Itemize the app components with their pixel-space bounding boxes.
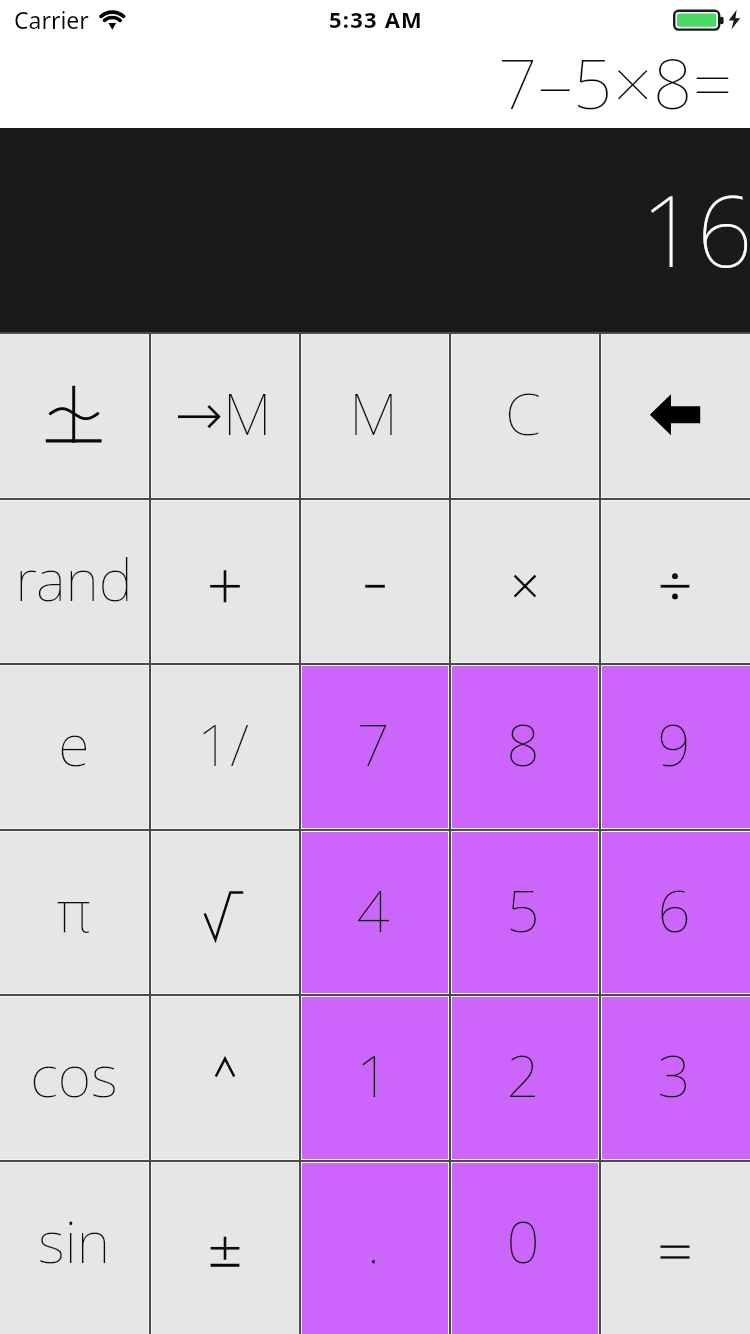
staticText: 0 [506,1201,540,1280]
staticText: 5 [506,870,540,949]
staticText: 6 [657,870,691,949]
staticText: M [349,373,398,452]
staticText: 4 [356,870,390,949]
button[interactable]: 7 [302,666,448,828]
staticText: 1 [356,1035,390,1114]
staticText: sin [38,1201,110,1280]
staticText: cos [30,1035,118,1114]
staticText: π [57,870,91,949]
button[interactable]: 4 [302,832,448,993]
staticText: →M [174,373,272,452]
staticText: e [58,704,90,783]
button[interactable]: 9 [602,666,750,828]
button[interactable]: power [152,997,298,1159]
other: Wi-Fi, battery charging [0,0,750,40]
staticText: 5:33 AM [329,4,424,34]
staticText: 7–5×8= [498,35,733,129]
button[interactable]: 1 [302,997,448,1159]
button[interactable]: 5 [452,832,598,993]
button[interactable]: minus [302,501,448,662]
staticText: 3 [657,1035,691,1114]
staticText: 16 [641,162,750,295]
staticText: 8 [506,704,540,783]
button[interactable]: 3 [602,997,750,1159]
button[interactable]: . [302,1163,448,1334]
button[interactable]: backspace [602,335,750,497]
button[interactable]: π [0,832,148,993]
button[interactable]: cos [0,997,148,1159]
staticText: Carrier [14,4,89,35]
button[interactable]: 2 [452,997,598,1159]
staticText: 7 [356,704,390,783]
button[interactable]: M [302,335,448,497]
button[interactable]: multiply [452,501,598,662]
button[interactable]: 1/ [152,666,298,828]
staticText: 2 [506,1035,540,1114]
button[interactable]: sin [0,1163,148,1334]
button[interactable]: equals [602,1163,750,1334]
staticText: . [367,1201,380,1280]
staticText: rand [15,539,133,618]
button[interactable]: rand [0,501,148,662]
button[interactable]: →M [152,335,298,497]
button[interactable]: C [452,335,598,497]
button[interactable]: 0 [452,1163,598,1334]
staticText: C [505,373,541,452]
button[interactable]: 6 [602,832,750,993]
staticText: 1/ [197,704,249,783]
button[interactable]: plus [152,501,298,662]
button[interactable]: square root [152,832,298,993]
button[interactable]: plus minus [152,1163,298,1334]
staticText: 9 [657,704,691,783]
button[interactable]: sin plot [0,335,148,497]
button[interactable]: divide [602,501,750,662]
button[interactable]: e [0,666,148,828]
button[interactable]: 8 [452,666,598,828]
